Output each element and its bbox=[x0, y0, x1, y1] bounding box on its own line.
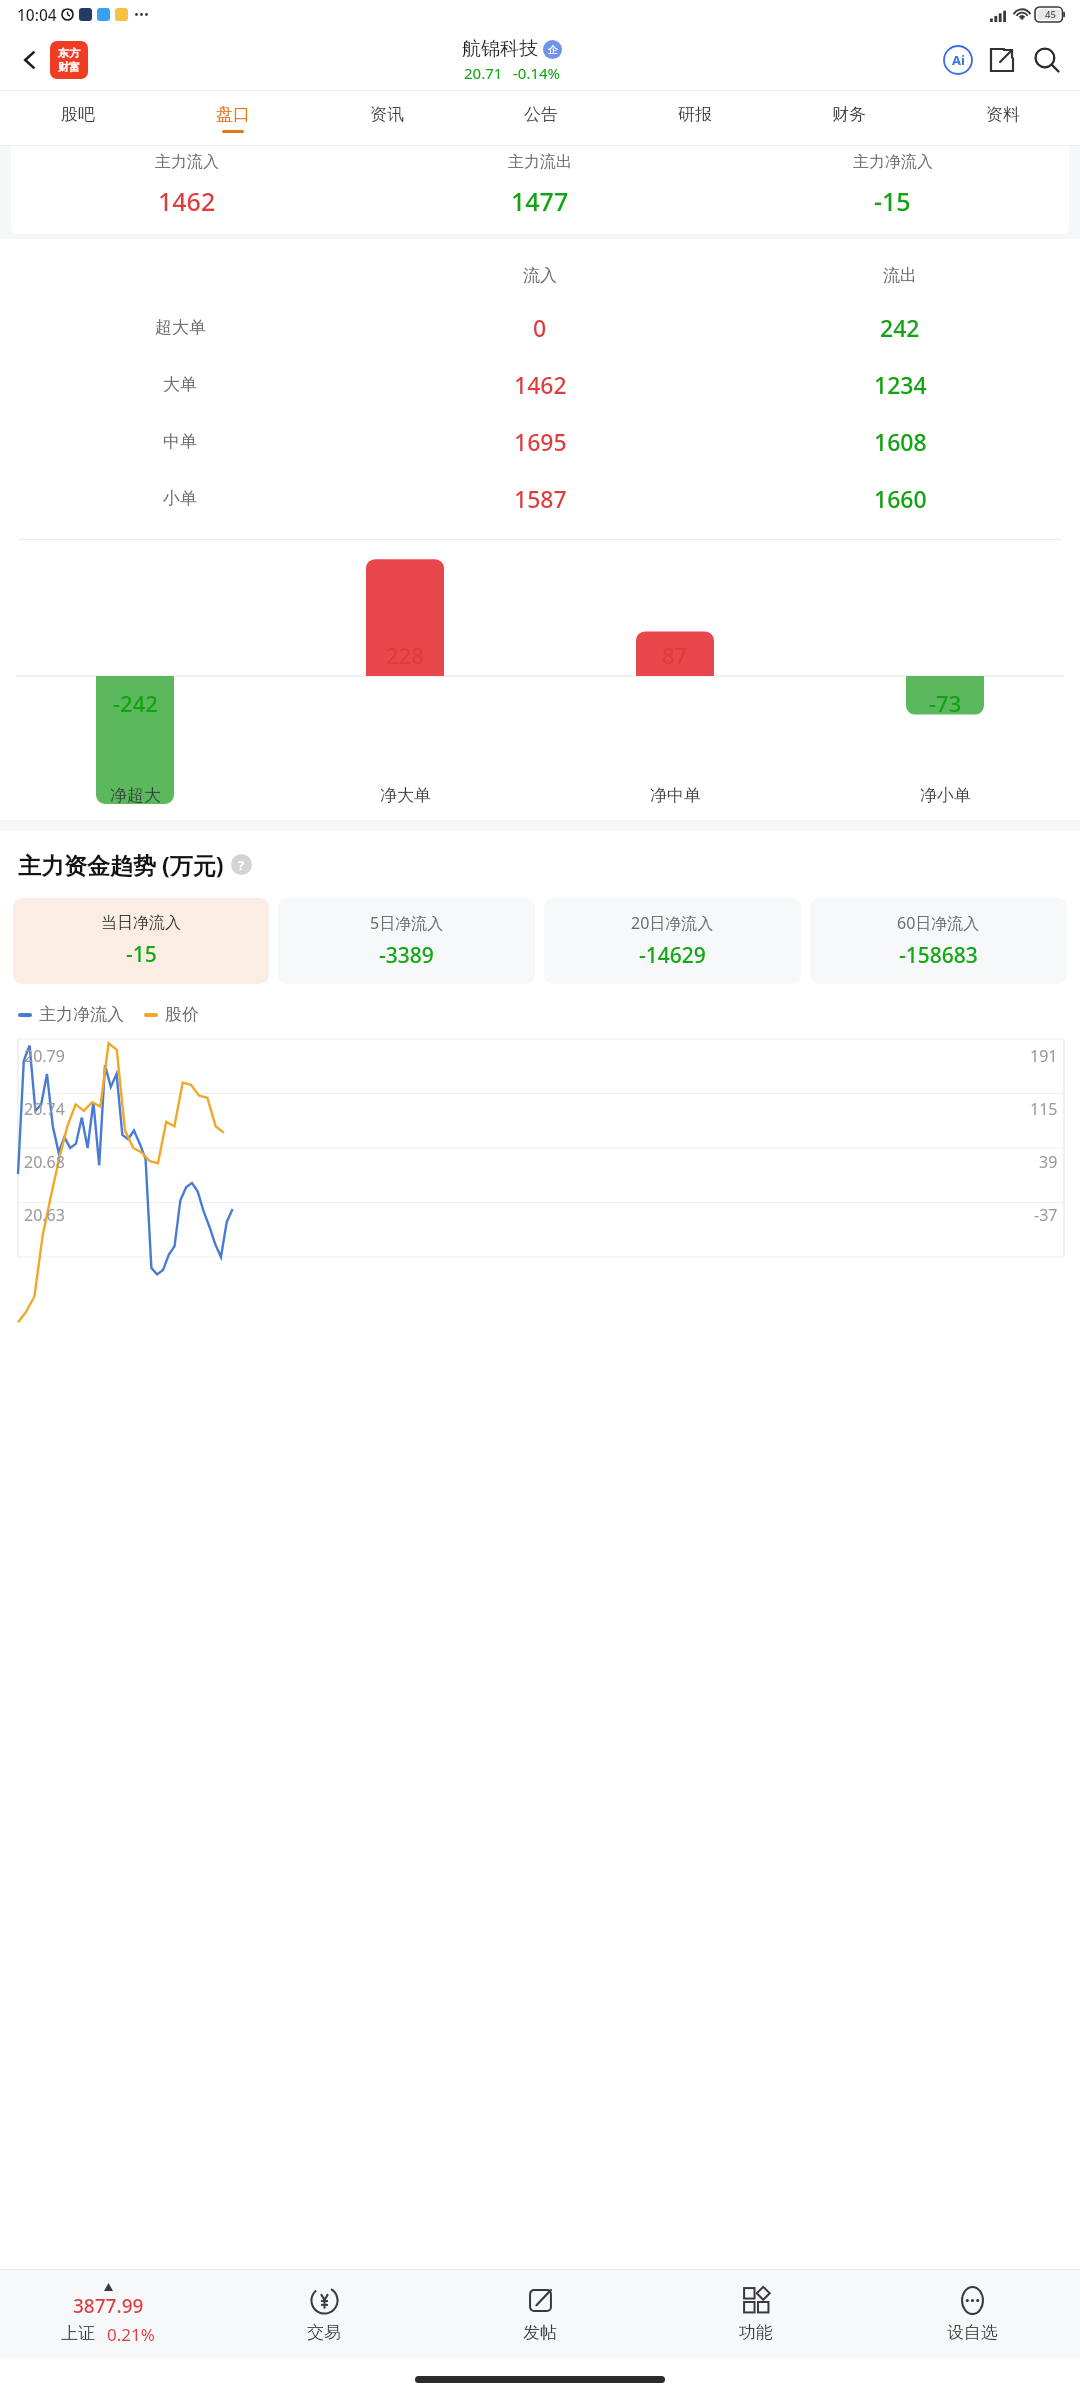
staticText: 5日净流入 bbox=[370, 912, 444, 934]
staticText: -37 bbox=[1034, 1204, 1058, 1226]
staticText: 1462 bbox=[514, 369, 567, 400]
staticText: 242 bbox=[880, 312, 920, 343]
staticText: 主力净流入 bbox=[853, 152, 933, 172]
staticText: 20.71 bbox=[464, 63, 503, 83]
staticText: 20.79 bbox=[24, 1045, 65, 1067]
staticText: 10:04 bbox=[17, 4, 57, 25]
staticText: 20.68 bbox=[24, 1151, 65, 1173]
staticText: 公告 bbox=[524, 104, 558, 125]
staticText: 20.63 bbox=[24, 1204, 65, 1226]
button[interactable]: 3877.99 bbox=[0, 2270, 216, 2358]
staticText: -73 bbox=[929, 688, 962, 718]
staticText: 主力流入 bbox=[155, 152, 219, 172]
staticText: 87 bbox=[662, 640, 688, 670]
staticText: 流出 bbox=[883, 265, 917, 286]
staticText: 发帖 bbox=[523, 2322, 557, 2343]
staticText: 20日净流入 bbox=[631, 912, 714, 934]
staticText: -3389 bbox=[379, 941, 434, 970]
staticText: 功能 bbox=[739, 2322, 773, 2343]
staticText: 1695 bbox=[514, 426, 567, 457]
staticText: 上证 bbox=[61, 2323, 95, 2344]
button[interactable]: Search bbox=[1024, 37, 1070, 83]
staticText: 1660 bbox=[874, 483, 927, 514]
staticText: -15 bbox=[874, 184, 911, 218]
staticText: 191 bbox=[1030, 1045, 1058, 1067]
button[interactable]: 设自选 bbox=[864, 2270, 1080, 2358]
staticText: 39 bbox=[1039, 1151, 1058, 1173]
staticText: 3877.99 bbox=[73, 2293, 144, 2319]
staticText: -0.14% bbox=[513, 63, 561, 83]
button[interactable]: 60日净流入 bbox=[810, 898, 1067, 984]
staticText: 财富 bbox=[58, 60, 80, 74]
staticText: 0 bbox=[533, 312, 547, 343]
button[interactable]: 盘口 bbox=[155, 91, 310, 146]
staticText: 45 bbox=[1045, 8, 1056, 21]
button[interactable]: 功能 bbox=[648, 2270, 864, 2358]
staticText: 20.74 bbox=[24, 1098, 65, 1120]
staticText: 1462 bbox=[158, 184, 216, 218]
staticText: 交易 bbox=[307, 2322, 341, 2343]
button[interactable]: AI bbox=[936, 38, 980, 82]
button[interactable]: 20日净流入 bbox=[544, 898, 801, 984]
button[interactable]: Share bbox=[980, 38, 1024, 82]
staticText: 主力净流入 bbox=[39, 1004, 124, 1025]
staticText: 财务 bbox=[832, 104, 866, 125]
button[interactable]: Help bbox=[231, 854, 252, 875]
staticText: 小单 bbox=[163, 488, 197, 509]
staticText: -242 bbox=[113, 688, 158, 718]
staticText: ? bbox=[238, 856, 245, 874]
staticText: 净中单 bbox=[650, 785, 701, 806]
staticText: 资料 bbox=[986, 104, 1020, 125]
staticText: 主力资金趋势 (万元) bbox=[18, 849, 224, 880]
button[interactable]: 研报 bbox=[618, 91, 772, 146]
staticText: 研报 bbox=[678, 104, 712, 125]
staticText: 1477 bbox=[511, 184, 569, 218]
button[interactable]: 5日净流入 bbox=[278, 898, 535, 984]
staticText: 超大单 bbox=[155, 317, 206, 338]
staticText: 大单 bbox=[163, 374, 197, 395]
button[interactable]: 当日净流入 bbox=[13, 898, 269, 984]
staticText: Ai bbox=[952, 51, 965, 69]
staticText: 股吧 bbox=[61, 104, 95, 125]
staticText: 228 bbox=[386, 640, 424, 670]
button[interactable]: 公告 bbox=[464, 91, 618, 146]
staticText: 设自选 bbox=[947, 2322, 998, 2343]
button[interactable]: 发帖 bbox=[432, 2270, 648, 2358]
staticText: 企 bbox=[548, 43, 558, 56]
staticText: 中单 bbox=[163, 431, 197, 452]
staticText: 资讯 bbox=[370, 104, 404, 125]
staticText: 1234 bbox=[874, 369, 927, 400]
staticText: -14629 bbox=[639, 941, 706, 970]
staticText: 1587 bbox=[514, 483, 567, 514]
button[interactable]: 资料 bbox=[926, 91, 1080, 146]
staticText: 盘口 bbox=[216, 104, 250, 125]
staticText: 0.21% bbox=[107, 2323, 155, 2346]
staticText: 流入 bbox=[523, 265, 557, 286]
staticText: -158683 bbox=[899, 941, 978, 970]
staticText: 净小单 bbox=[920, 785, 971, 806]
staticText: 60日净流入 bbox=[897, 912, 980, 934]
staticText: 股价 bbox=[165, 1004, 199, 1025]
button[interactable]: 东方财富 bbox=[50, 41, 88, 79]
staticText: -15 bbox=[126, 940, 157, 969]
staticText: 当日净流入 bbox=[101, 913, 181, 933]
staticText: 115 bbox=[1030, 1098, 1058, 1120]
button[interactable]: 股吧 bbox=[0, 91, 155, 146]
staticText: 净大单 bbox=[380, 785, 431, 806]
staticText: 航锦科技 bbox=[462, 37, 538, 61]
button[interactable]: 财务 bbox=[772, 91, 926, 146]
button[interactable]: 资讯 bbox=[310, 91, 464, 146]
staticText: 东方 bbox=[58, 46, 80, 60]
button[interactable]: 交易 bbox=[216, 2270, 432, 2358]
staticText: 主力流出 bbox=[508, 152, 572, 172]
staticText: 1608 bbox=[874, 426, 927, 457]
button[interactable]: Back bbox=[10, 40, 50, 80]
staticText: 净超大 bbox=[110, 785, 161, 806]
